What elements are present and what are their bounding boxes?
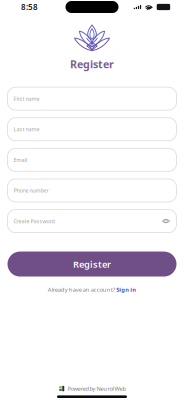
staticText: First name xyxy=(13,95,39,102)
button[interactable]: First name xyxy=(7,87,176,110)
staticText: 8:58 xyxy=(21,2,38,12)
button[interactable]: Register xyxy=(7,252,176,277)
staticText: Register xyxy=(70,57,114,71)
staticText: Sign in xyxy=(116,286,136,293)
button[interactable]: Last name xyxy=(7,118,176,141)
staticText: Create Password xyxy=(13,217,54,225)
button[interactable]: Already have an account? xyxy=(48,286,136,293)
staticText: Already have an account? xyxy=(48,286,115,293)
button[interactable]: Email xyxy=(7,148,176,171)
staticText: Last name xyxy=(13,126,39,133)
staticText: Register xyxy=(73,258,111,270)
button[interactable]: Create Password xyxy=(7,210,176,233)
staticText: Powered by Neurol Web xyxy=(67,385,125,392)
staticText: Email xyxy=(13,156,26,163)
button[interactable]: Phone number xyxy=(7,179,176,202)
staticText: Phone number xyxy=(13,187,48,194)
